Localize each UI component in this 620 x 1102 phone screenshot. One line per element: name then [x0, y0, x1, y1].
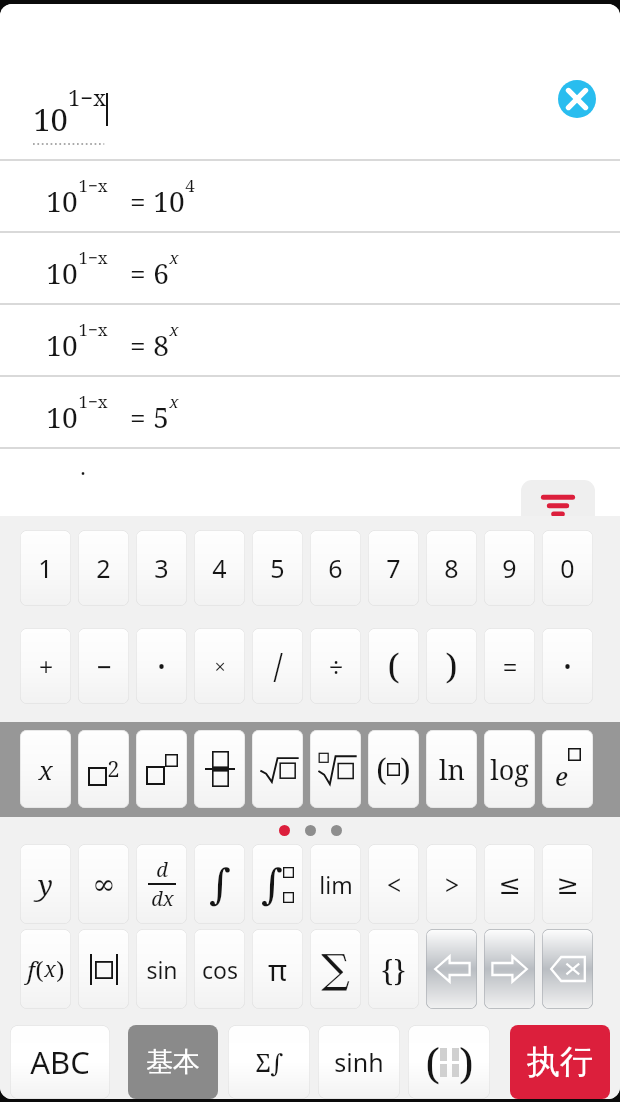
staticText: 10	[153, 182, 185, 220]
button[interactable]: 7	[368, 530, 419, 606]
button[interactable]: Matrix	[408, 1025, 490, 1099]
button[interactable]: 6	[310, 530, 361, 606]
button[interactable]: nth root	[310, 730, 361, 808]
staticText: =	[502, 648, 518, 685]
staticText: 3	[154, 551, 169, 585]
button[interactable]: y	[20, 844, 71, 924]
button[interactable]: absolute value	[78, 929, 129, 1009]
button[interactable]: /	[252, 628, 303, 704]
button[interactable]: limit	[310, 844, 361, 924]
button[interactable]: pi	[252, 929, 303, 1009]
button[interactable]: (	[368, 628, 419, 704]
staticText: −	[96, 648, 112, 685]
button[interactable]: −	[78, 628, 129, 704]
button[interactable]: x	[20, 730, 71, 808]
staticText: (	[387, 642, 400, 690]
button[interactable]: 0	[542, 530, 593, 606]
button[interactable]: integral	[194, 844, 245, 924]
button[interactable]: Backspace	[542, 929, 593, 1009]
staticText: 10	[46, 182, 78, 220]
staticText: d	[156, 856, 168, 883]
button[interactable]: square root	[252, 730, 303, 808]
button[interactable]: less than or equal	[484, 844, 535, 924]
button[interactable]: e to the power	[542, 730, 593, 808]
staticText: 1−x	[68, 82, 106, 112]
button[interactable]: 1	[20, 530, 71, 606]
button[interactable]: 2	[78, 530, 129, 606]
button[interactable]: 10	[0, 305, 620, 377]
button[interactable]: ABC keyboard	[10, 1025, 110, 1099]
button[interactable]: braces	[368, 929, 419, 1009]
staticText: (	[35, 953, 44, 986]
button[interactable]: ·	[136, 628, 187, 704]
button[interactable]: 4	[194, 530, 245, 606]
staticText: 6	[153, 254, 169, 292]
staticText: 6	[328, 551, 343, 585]
button[interactable]: ·	[0, 449, 620, 521]
button[interactable]: 10	[0, 161, 620, 233]
button[interactable]: derivative	[136, 844, 187, 924]
staticText: x	[169, 246, 179, 269]
button[interactable]: 9	[484, 530, 535, 606]
staticText: 2	[107, 753, 120, 783]
staticText: 10	[33, 98, 68, 140]
button[interactable]: 10	[0, 377, 620, 449]
staticText: f	[27, 953, 35, 986]
button[interactable]: ÷	[310, 628, 361, 704]
staticText: {}	[381, 950, 406, 989]
staticText: 0	[560, 551, 575, 585]
button[interactable]: power	[136, 730, 187, 808]
button[interactable]: 执行	[510, 1025, 610, 1099]
staticText: 1−x	[78, 390, 108, 413]
staticText: =	[108, 254, 153, 292]
button[interactable]: summation	[310, 929, 361, 1009]
button[interactable]: Hyperbolic functions	[318, 1025, 400, 1099]
button[interactable]: definite integral	[252, 844, 303, 924]
button[interactable]: greater than or equal	[542, 844, 593, 924]
staticText: 9	[502, 551, 517, 585]
button[interactable]: f of x	[20, 929, 71, 1009]
button[interactable]: =	[484, 628, 535, 704]
button[interactable]: .	[542, 628, 593, 704]
staticText: 7	[386, 551, 401, 585]
button[interactable]: log	[484, 730, 535, 808]
staticText: 1	[38, 551, 53, 585]
button[interactable]: sine	[136, 929, 187, 1009]
button[interactable]: Filter suggestions	[521, 480, 595, 524]
button[interactable]: 10	[0, 233, 620, 305]
staticText: ·	[80, 457, 86, 487]
staticText: (	[425, 1034, 440, 1091]
button[interactable]: Sigma integral palette	[228, 1025, 310, 1099]
button[interactable]: less than	[368, 844, 419, 924]
staticText: )	[400, 749, 411, 790]
button[interactable]: 基本	[128, 1025, 218, 1099]
button[interactable]: infinity	[78, 844, 129, 924]
staticText: x	[169, 318, 179, 341]
staticText: 执行	[527, 1041, 593, 1083]
button[interactable]: 3	[136, 530, 187, 606]
button[interactable]: +	[20, 628, 71, 704]
staticText: x	[44, 955, 56, 984]
button[interactable]: )	[426, 628, 477, 704]
staticText: >	[444, 866, 460, 903]
staticText: ∞	[92, 868, 116, 901]
button[interactable]: 5	[252, 530, 303, 606]
button[interactable]: ×	[194, 628, 245, 704]
staticText: 1−x	[78, 174, 108, 197]
button[interactable]: ln	[426, 730, 477, 808]
button[interactable]: square	[78, 730, 129, 808]
staticText: x	[38, 752, 53, 787]
button[interactable]: 8	[426, 530, 477, 606]
button[interactable]: Move cursor right	[484, 929, 535, 1009]
staticText: Σ∫	[255, 1045, 284, 1079]
staticText: ∫	[261, 860, 283, 909]
button[interactable]: cosine	[194, 929, 245, 1009]
button[interactable]: fraction	[194, 730, 245, 808]
button[interactable]: greater than	[426, 844, 477, 924]
staticText: cos	[202, 954, 238, 985]
button[interactable]: parentheses	[368, 730, 419, 808]
staticText: 5	[270, 551, 285, 585]
staticText: ln	[439, 751, 465, 788]
button[interactable]: Clear input	[558, 80, 596, 118]
button[interactable]: Move cursor left	[426, 929, 477, 1009]
